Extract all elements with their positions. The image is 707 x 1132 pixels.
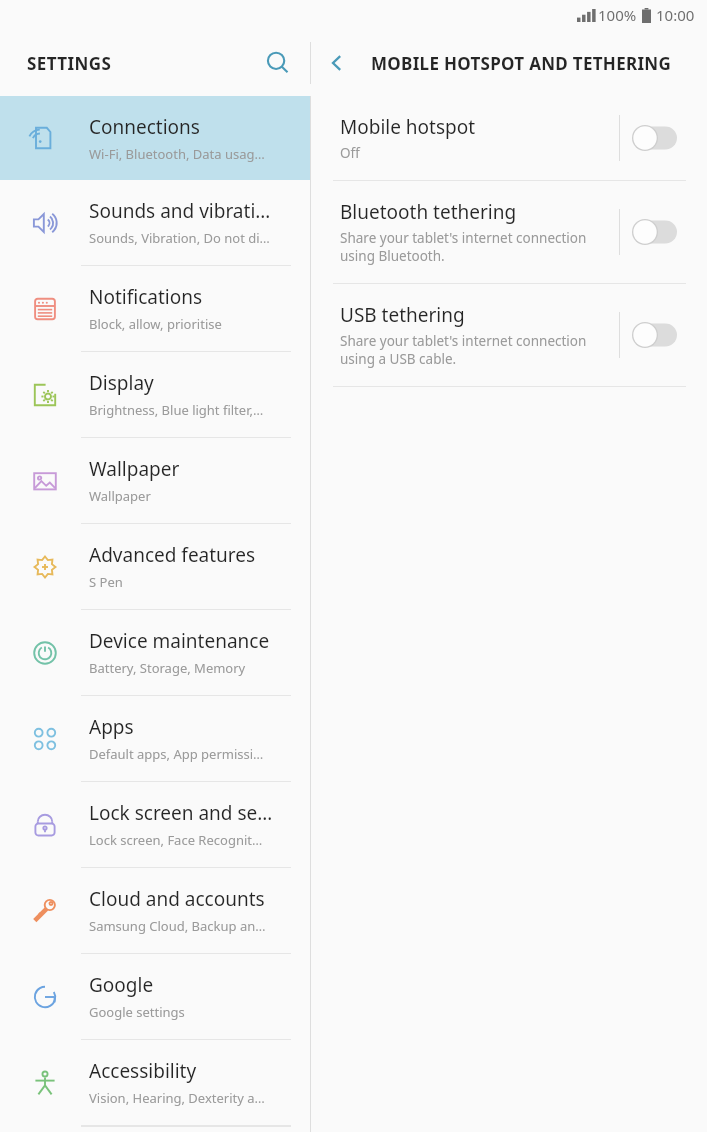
staticText: Share your tablet's internet connection <box>340 332 587 350</box>
button[interactable]: Advanced features <box>0 524 310 609</box>
staticText: Vision, Hearing, Dexterity a… <box>89 1089 265 1107</box>
staticText: Display <box>89 370 154 396</box>
staticText: Sounds, Vibration, Do not di… <box>89 229 270 247</box>
staticText: MOBILE HOTSPOT AND TETHERING <box>371 52 672 75</box>
button[interactable]: Accessibility <box>0 1040 310 1125</box>
button[interactable]: Device maintenance <box>0 610 310 695</box>
staticText: Google settings <box>89 1003 185 1021</box>
staticText: Apps <box>89 714 134 740</box>
staticText: Share your tablet's internet connection <box>340 229 587 247</box>
staticText: Lock screen, Face Recognit… <box>89 831 263 849</box>
staticText: S Pen <box>89 573 123 591</box>
staticText: USB tethering <box>340 302 465 328</box>
button[interactable]: Back <box>311 37 363 89</box>
staticText: using Bluetooth. <box>340 247 445 265</box>
button[interactable]: Connections <box>0 96 310 180</box>
staticText: 10:00 <box>656 5 695 25</box>
button[interactable]: Toggle Mobile hotspot <box>620 114 687 162</box>
staticText: Accessibility <box>89 1058 197 1084</box>
staticText: Device maintenance <box>89 628 270 654</box>
staticText: Sounds and vibrati… <box>89 198 271 224</box>
staticText: Bluetooth tethering <box>340 199 517 225</box>
button[interactable]: Wallpaper <box>0 438 310 523</box>
staticText: Off <box>340 144 360 162</box>
button[interactable]: Google <box>0 954 310 1039</box>
staticText: Lock screen and se… <box>89 800 273 826</box>
staticText: 100% <box>598 5 637 25</box>
staticText: Google <box>89 972 154 998</box>
staticText: Cloud and accounts <box>89 886 265 912</box>
button[interactable]: Mobile hotspot <box>311 96 707 180</box>
staticText: Battery, Storage, Memory <box>89 659 246 677</box>
button[interactable]: Toggle USB tethering <box>620 311 687 359</box>
button[interactable]: Bluetooth tethering <box>311 181 707 283</box>
staticText: Samsung Cloud, Backup an… <box>89 917 266 935</box>
staticText: Mobile hotspot <box>340 114 476 140</box>
staticText: Connections <box>89 114 200 140</box>
staticText: Advanced features <box>89 542 256 568</box>
staticText: Wi-Fi, Bluetooth, Data usag… <box>89 145 265 163</box>
staticText: SETTINGS <box>27 52 112 75</box>
staticText: Brightness, Blue light filter,… <box>89 401 264 419</box>
staticText: Notifications <box>89 284 203 310</box>
staticText: Wallpaper <box>89 456 180 482</box>
button[interactable]: Display <box>0 352 310 437</box>
staticText: Wallpaper <box>89 487 151 505</box>
button[interactable]: Sounds and vibrati… <box>0 180 310 265</box>
staticText: Block, allow, prioritise <box>89 315 222 333</box>
button[interactable]: USB tethering <box>311 284 707 386</box>
button[interactable]: Search <box>250 35 306 91</box>
staticText: Default apps, App permissi… <box>89 745 264 763</box>
button[interactable]: Cloud and accounts <box>0 868 310 953</box>
button[interactable]: Toggle Bluetooth tethering <box>620 208 687 256</box>
button[interactable]: Apps <box>0 696 310 781</box>
staticText: using a USB cable. <box>340 350 457 368</box>
button[interactable]: Lock screen and se… <box>0 782 310 867</box>
button[interactable]: Notifications <box>0 266 310 351</box>
